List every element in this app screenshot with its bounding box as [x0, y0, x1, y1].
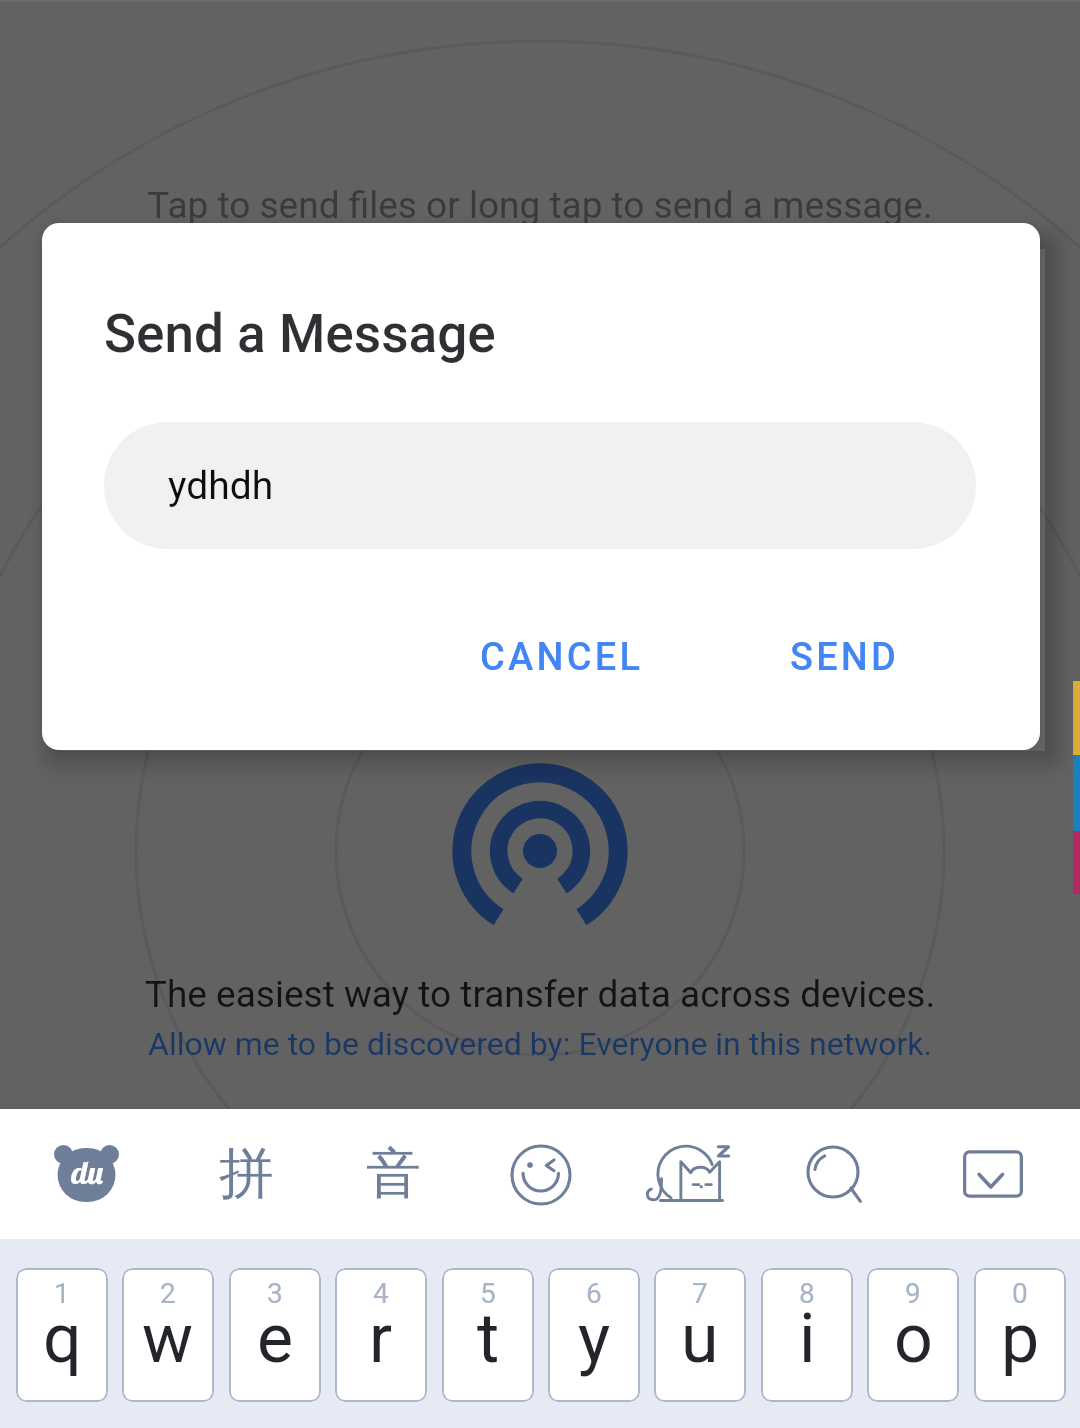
button[interactable]: 7 [654, 1268, 746, 1402]
button[interactable]: 4 [335, 1268, 427, 1402]
staticText: t [477, 1299, 500, 1379]
staticText: ydhdh [168, 463, 274, 509]
staticText: 7 [692, 1277, 708, 1310]
button[interactable]: Emoji [486, 1120, 596, 1230]
button[interactable]: 5 [442, 1268, 534, 1402]
staticText: Tap to send files or long tap to send a … [0, 184, 1080, 227]
button[interactable]: 9 [867, 1268, 959, 1402]
button[interactable]: 3 [229, 1268, 321, 1402]
staticText: Send a Message [104, 303, 496, 365]
staticText: 1 [54, 1277, 70, 1310]
staticText: i [799, 1299, 816, 1379]
button[interactable]: Hide keyboard [938, 1119, 1048, 1229]
staticText: CANCEL [480, 635, 644, 680]
staticText: w [142, 1299, 194, 1379]
button[interactable]: ydhdh [104, 422, 976, 549]
staticText: 6 [586, 1277, 602, 1310]
staticText: r [369, 1299, 393, 1379]
staticText: 5 [480, 1277, 496, 1310]
staticText: 9 [905, 1277, 921, 1310]
staticText: q [43, 1299, 82, 1379]
button[interactable]: Search [778, 1119, 888, 1229]
button[interactable]: 0 [974, 1268, 1066, 1402]
button[interactable]: Allow me to be discovered by: Everyone i… [0, 1025, 1080, 1063]
button[interactable]: Send files [452, 763, 628, 939]
staticText: u [681, 1299, 719, 1379]
button[interactable]: SEND [758, 613, 932, 702]
button[interactable]: 8 [761, 1268, 853, 1402]
staticText: 3 [267, 1277, 283, 1310]
staticText: 音 [366, 1139, 421, 1208]
button[interactable]: 拼 [191, 1118, 301, 1228]
staticText: 4 [373, 1277, 389, 1310]
staticText: SEND [790, 635, 900, 680]
staticText: e [257, 1299, 294, 1379]
button[interactable]: 音 [338, 1118, 448, 1228]
staticText: p [1001, 1299, 1040, 1379]
button[interactable]: 1 [16, 1268, 108, 1402]
staticText: 0 [1012, 1277, 1028, 1310]
staticText: o [894, 1299, 933, 1379]
staticText: The easiest way to transfer data across … [0, 973, 1080, 1016]
button[interactable]: 6 [548, 1268, 640, 1402]
staticText: 8 [799, 1277, 815, 1310]
button[interactable]: Baidu input [31, 1118, 141, 1228]
staticText: y [578, 1299, 611, 1379]
staticText: 拼 [219, 1139, 274, 1208]
button[interactable]: Stickers [632, 1119, 742, 1229]
button[interactable]: CANCEL [448, 613, 676, 702]
staticText: du [71, 1152, 105, 1192]
button[interactable]: 2 [122, 1268, 214, 1402]
staticText: 2 [160, 1277, 176, 1310]
